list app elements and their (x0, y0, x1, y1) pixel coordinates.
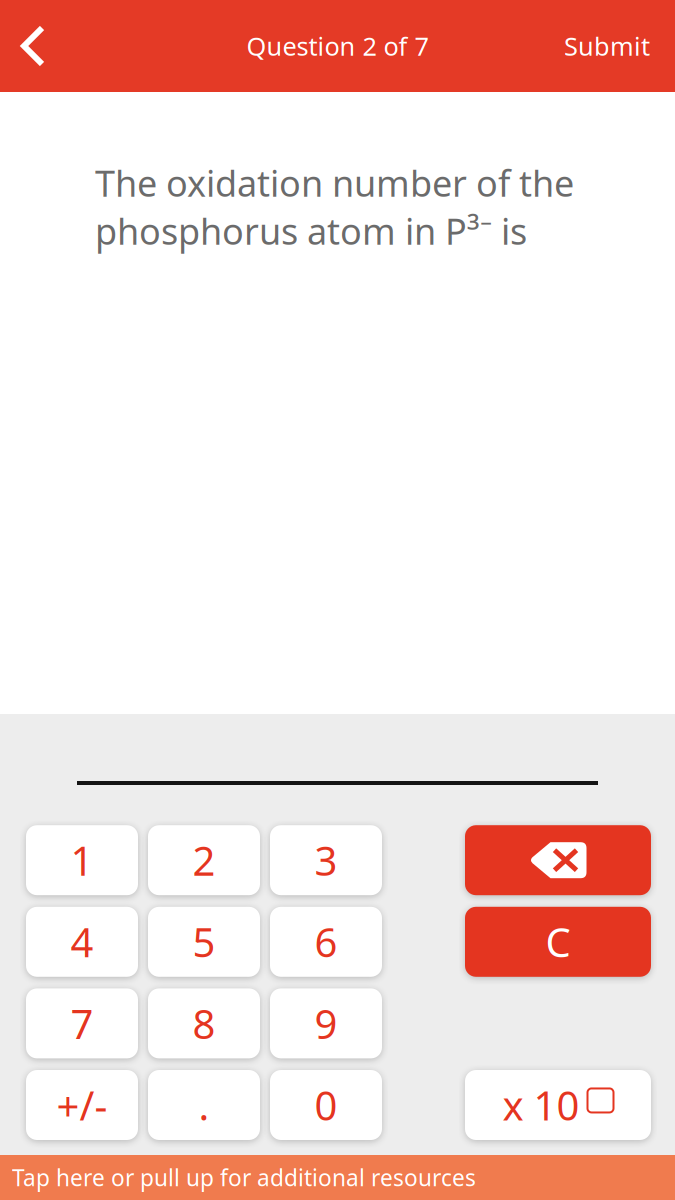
staticText: 8 (192, 997, 215, 1050)
button[interactable]: 8 (148, 988, 260, 1058)
button[interactable]: 6 (270, 907, 382, 977)
button[interactable]: Back (7, 16, 59, 76)
button[interactable]: 2 (148, 825, 260, 895)
staticText: 5 (192, 915, 215, 968)
button[interactable]: 0 (270, 1070, 382, 1140)
staticText: 1 (70, 834, 93, 887)
staticText: 9 (314, 997, 337, 1050)
button[interactable]: 7 (26, 988, 138, 1058)
staticText: Question 2 of 7 (246, 29, 428, 63)
staticText: x 10 (502, 1078, 579, 1131)
button[interactable]: Delete (465, 825, 651, 895)
button[interactable]: 1 (26, 825, 138, 895)
button[interactable]: C (465, 907, 651, 977)
button[interactable]: +/- (26, 1070, 138, 1140)
button[interactable]: 5 (148, 907, 260, 977)
staticText: 2 (192, 834, 215, 887)
staticText: . (198, 1078, 209, 1131)
staticText: Tap here or pull up for additional resou… (12, 1162, 476, 1192)
staticText: 3 (314, 834, 337, 887)
button[interactable]: 4 (26, 907, 138, 977)
staticText: C (545, 915, 570, 968)
button[interactable]: x 10 (465, 1070, 651, 1140)
staticText: 6 (314, 915, 337, 968)
staticText: 7 (70, 997, 93, 1050)
staticText: 4 (70, 915, 93, 968)
staticText: Submit (564, 29, 650, 63)
staticText: +/- (56, 1078, 107, 1131)
button[interactable]: 3 (270, 825, 382, 895)
button[interactable]: Submit (550, 16, 664, 76)
button[interactable]: . (148, 1070, 260, 1140)
staticText: 0 (314, 1078, 337, 1131)
staticText: The oxidation number of the phosphorus a… (95, 159, 574, 255)
button[interactable]: 9 (270, 988, 382, 1058)
button[interactable]: Tap here or pull up for additional resou… (0, 1155, 675, 1200)
